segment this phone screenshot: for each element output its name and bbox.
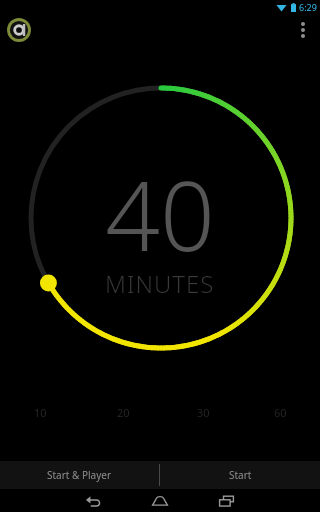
button[interactable]: Start	[160, 461, 320, 489]
button[interactable]: Recent apps	[193, 489, 260, 512]
staticText: 60	[274, 405, 287, 420]
button[interactable]: App logo	[6, 17, 32, 43]
button[interactable]: Home	[126, 489, 193, 512]
button[interactable]: Start & Player	[0, 461, 159, 489]
button[interactable]: Timer dial, 40 minutes	[0, 0, 320, 512]
staticText: Start	[229, 468, 252, 482]
staticText: 10	[34, 405, 47, 420]
button[interactable]: Back	[59, 489, 126, 512]
staticText: 40	[105, 148, 215, 279]
staticText: 30	[197, 405, 210, 420]
staticText: MINUTES	[105, 267, 215, 300]
staticText: Start & Player	[47, 468, 112, 482]
staticText: 6:29	[299, 1, 317, 13]
staticText: 20	[117, 405, 130, 420]
button[interactable]: More options	[291, 18, 315, 42]
